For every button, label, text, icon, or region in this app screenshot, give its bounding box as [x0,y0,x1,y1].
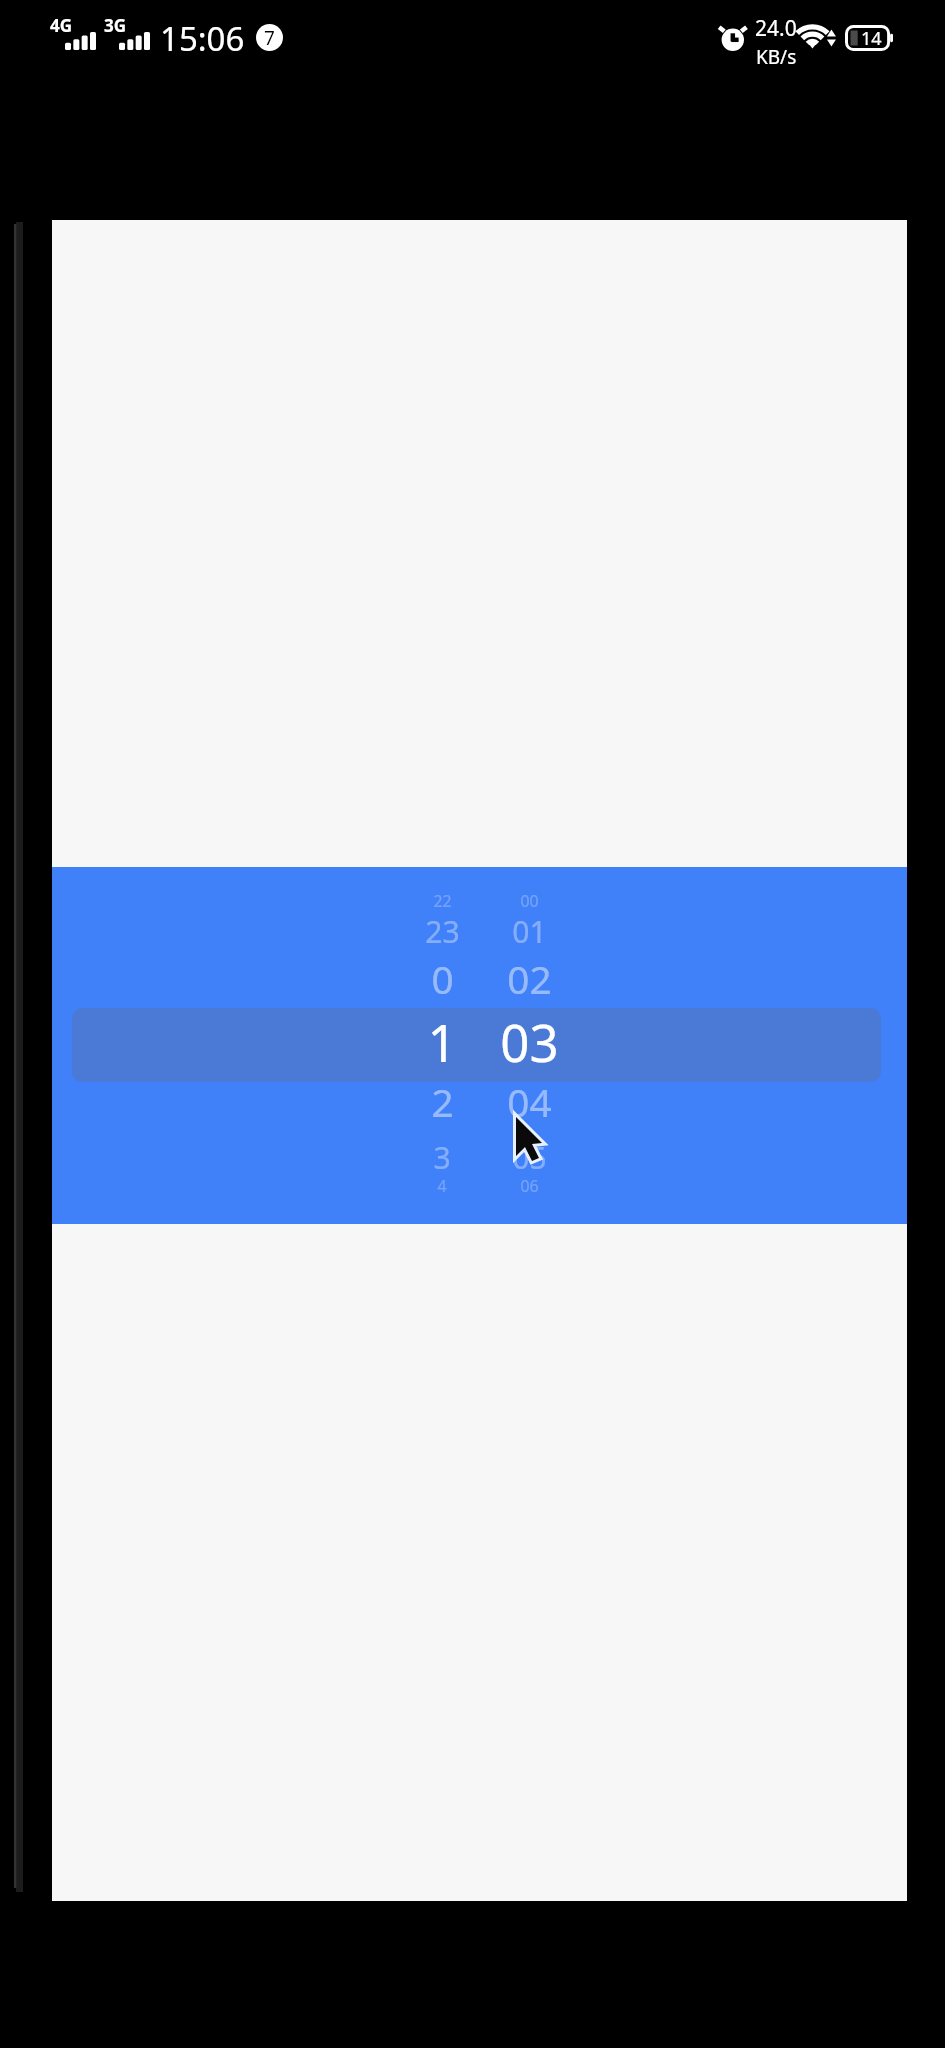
staticText: 1 [427,1007,457,1076]
button[interactable]: 06 [459,1150,599,1222]
button[interactable]: 3 [372,1121,512,1193]
staticText: 4 [437,1175,447,1197]
staticText: 24.0 [755,14,797,43]
other: Wi-Fi connected [798,21,836,49]
button[interactable]: 03 [459,1005,599,1077]
staticText: 2 [431,1076,454,1129]
other: 4G signal [50,14,96,50]
staticText: 03 [500,1007,559,1076]
button[interactable]: 05 [459,1121,599,1193]
button[interactable]: 4 [372,1150,512,1222]
staticText: 3 [433,1137,451,1178]
staticText: 01 [512,911,547,952]
staticText: 3G [104,14,127,37]
staticText: 15:06 [160,16,245,61]
staticText: 7 [264,25,275,51]
staticText: KB/s [756,44,797,70]
other: 3G signal [104,14,150,50]
staticText: 00 [520,890,539,912]
staticText: 14 [861,26,882,51]
staticText: 22 [433,890,452,912]
button[interactable]: 22 [52,867,907,1224]
other: Alarm set [719,23,749,51]
staticText: 0 [431,953,454,1006]
staticText: 23 [425,911,460,952]
button[interactable]: 01 [459,895,599,967]
button[interactable]: 00 [459,865,599,937]
button[interactable]: 02 [459,943,599,1015]
staticText: 05 [512,1137,547,1178]
staticText: 04 [507,1076,552,1129]
button[interactable]: 0 [372,943,512,1015]
staticText: 02 [507,953,552,1006]
staticText: 4G [50,14,73,37]
staticText: 06 [520,1175,539,1197]
button[interactable]: 04 [459,1066,599,1138]
button[interactable]: 22 [372,865,512,937]
button[interactable]: 2 [372,1066,512,1138]
button[interactable]: 1 [372,1005,512,1077]
button[interactable]: 23 [372,895,512,967]
other: Battery 14 percent [845,25,893,51]
